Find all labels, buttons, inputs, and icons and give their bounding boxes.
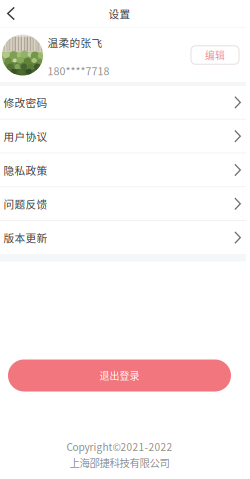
staticText: 180****7718 <box>47 63 109 78</box>
button[interactable]: 隐私政策 <box>0 154 246 186</box>
button[interactable]: Back <box>0 0 22 27</box>
staticText: 温柔的张飞 <box>47 35 102 50</box>
staticText: 问题反馈 <box>3 196 47 211</box>
button[interactable]: 退出登录 <box>8 359 231 391</box>
button[interactable]: 用户协议 <box>0 120 246 153</box>
staticText: 设置 <box>108 6 130 21</box>
staticText: 版本更新 <box>3 230 47 245</box>
button[interactable]: 问题反馈 <box>0 187 246 220</box>
button[interactable]: 版本更新 <box>0 221 246 254</box>
staticText: 编辑 <box>205 48 225 62</box>
staticText: 上海邵捷科技有限公司 <box>69 455 169 470</box>
staticText: 退出登录 <box>99 368 139 383</box>
staticText: 隐私政策 <box>3 162 47 178</box>
button[interactable]: 修改密码 <box>0 86 246 119</box>
staticText: 修改密码 <box>3 95 47 110</box>
staticText: Copyright©2021-2022 <box>66 439 172 454</box>
staticText: 用户协议 <box>3 128 47 144</box>
button[interactable]: 温柔的张飞 <box>0 28 246 82</box>
